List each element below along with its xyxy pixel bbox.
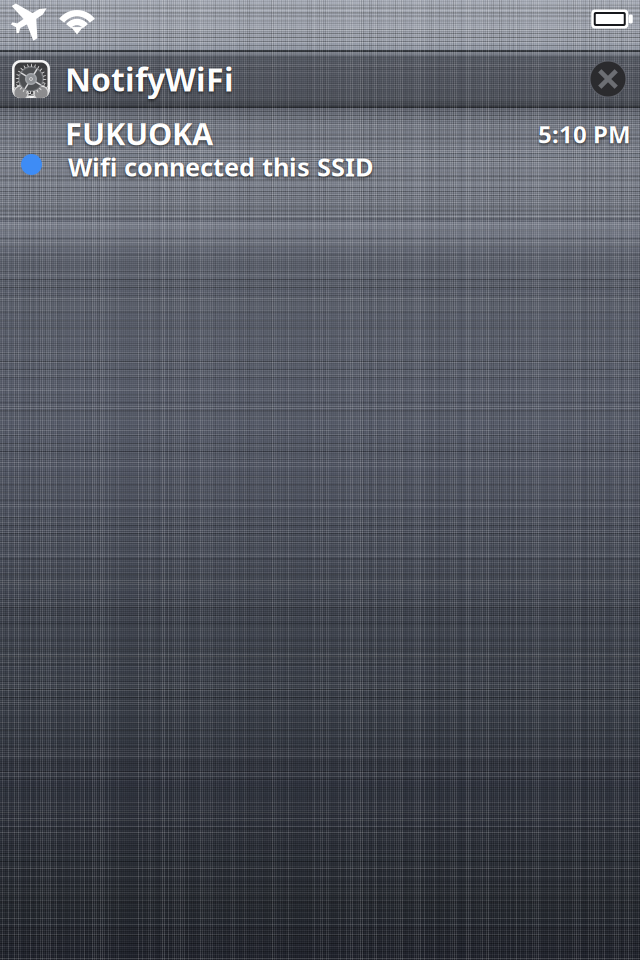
button[interactable]: Close NotifyWiFi notifications — [589, 60, 627, 98]
staticText: 5:10 PM — [538, 118, 631, 150]
button[interactable]: FUKUOKA — [0, 108, 640, 222]
staticText: FUKUOKA — [65, 113, 213, 154]
staticText: NotifyWiFi — [65, 58, 234, 100]
staticText: Wifi connected this SSID — [68, 150, 374, 183]
